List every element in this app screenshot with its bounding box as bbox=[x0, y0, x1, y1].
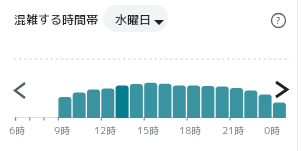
staticText: 21時 bbox=[222, 124, 244, 136]
staticText: 0時 bbox=[264, 124, 280, 136]
button[interactable] bbox=[270, 77, 292, 101]
staticText: 混雑する時間帯 bbox=[14, 11, 99, 28]
button[interactable]: 水曜日 bbox=[103, 5, 168, 32]
staticText: 6時 bbox=[9, 124, 25, 136]
staticText: 12時 bbox=[94, 124, 116, 136]
button[interactable]: ? bbox=[270, 12, 286, 28]
button[interactable] bbox=[9, 78, 31, 102]
staticText: 18時 bbox=[179, 124, 201, 136]
staticText: 9時 bbox=[54, 124, 70, 136]
staticText: 15時 bbox=[137, 124, 159, 136]
staticText: ? bbox=[276, 14, 281, 26]
staticText: 水曜日 bbox=[115, 11, 152, 28]
